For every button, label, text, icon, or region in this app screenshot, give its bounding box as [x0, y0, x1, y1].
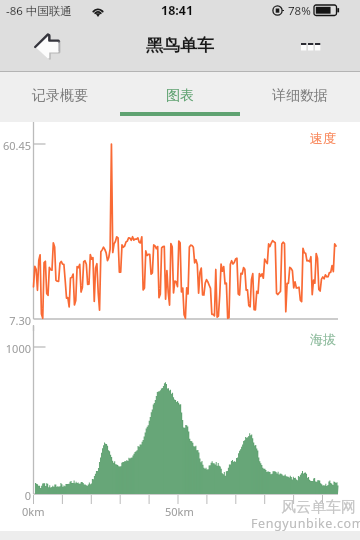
- staticText: 18:41: [161, 2, 194, 19]
- staticText: Fengyunbike.com: [251, 515, 360, 532]
- staticText: 风云单车网: [281, 498, 356, 517]
- staticText: 0km: [22, 504, 45, 519]
- staticText: 0: [24, 488, 31, 503]
- button[interactable]: 详细数据: [240, 72, 360, 122]
- staticText: 图表: [166, 87, 194, 105]
- staticText: 78%: [288, 3, 311, 19]
- staticText: 1000: [5, 341, 31, 356]
- staticText: 详细数据: [272, 87, 328, 105]
- staticText: 60.45: [2, 138, 31, 153]
- button[interactable]: 记录概要: [0, 72, 120, 122]
- button[interactable]: More options: [295, 38, 327, 56]
- staticText: 50km: [165, 504, 194, 519]
- staticText: 海拔: [310, 331, 336, 347]
- staticText: 速度: [310, 130, 336, 146]
- staticText: -86 中国联通: [6, 3, 72, 19]
- staticText: 黑鸟单车: [146, 35, 214, 56]
- staticText: 记录概要: [32, 87, 88, 105]
- button[interactable]: 图表: [120, 72, 240, 122]
- button[interactable]: Back: [32, 33, 62, 61]
- staticText: 7.30: [9, 313, 31, 328]
